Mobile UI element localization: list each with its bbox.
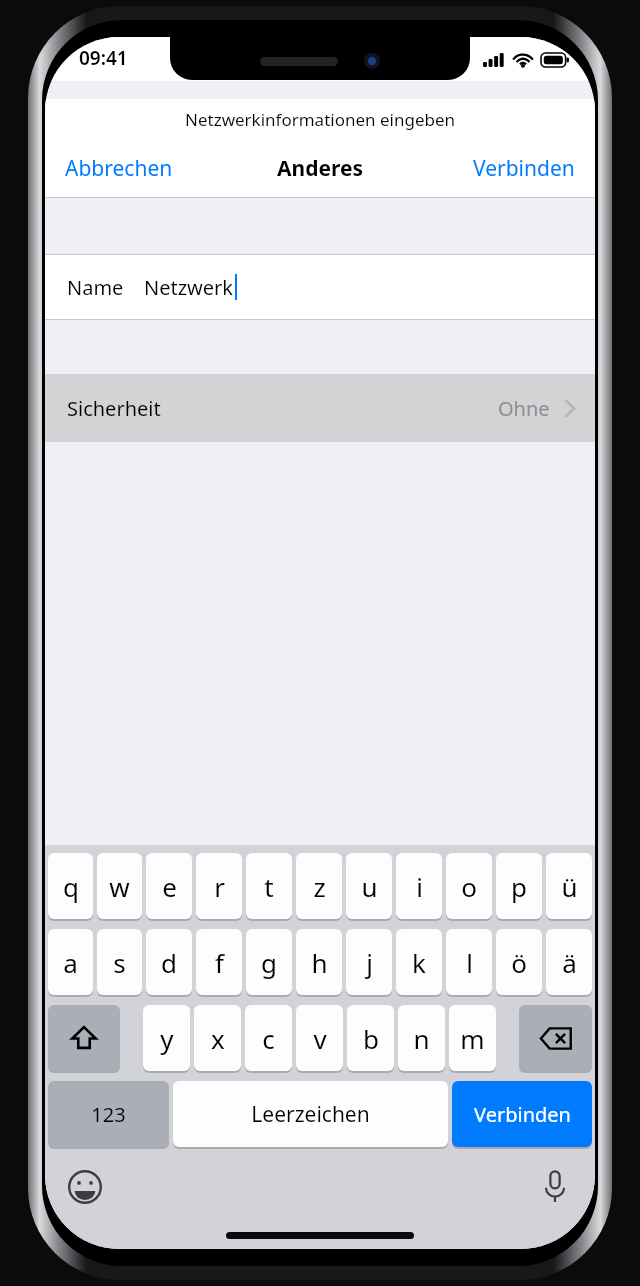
staticText: Verbinden [473,154,575,183]
button[interactable]: n [398,1005,445,1071]
button[interactable]: c [245,1005,292,1071]
staticText: Verbinden [474,1101,571,1128]
staticText: a [63,945,78,980]
staticText: z [313,869,326,904]
button[interactable]: Löschen [519,1005,592,1071]
staticText: x [211,1021,225,1056]
staticText: m [460,1021,485,1056]
button[interactable]: Abbrechen [45,144,193,193]
staticText: y [160,1021,174,1056]
staticText: h [311,945,328,980]
staticText: Anderes [277,154,364,183]
button[interactable]: Name [45,255,595,319]
button[interactable]: i [396,853,442,919]
staticText: f [215,945,224,980]
staticText: 123 [91,1101,126,1128]
button[interactable]: h [296,929,342,995]
button[interactable]: t [246,853,292,919]
button[interactable]: q [48,853,93,919]
button[interactable]: u [346,853,392,919]
button[interactable]: Shift [48,1005,120,1071]
staticText: Ohne [498,395,550,422]
button[interactable]: e [146,853,192,919]
staticText: p [511,869,527,904]
staticText: r [214,869,225,904]
button[interactable]: Verbinden [452,1081,592,1147]
staticText: Abbrechen [65,154,173,183]
staticText: s [113,945,126,980]
staticText: 09:41 [79,45,128,71]
button[interactable]: ä [546,929,592,995]
button[interactable]: Diktieren [533,1165,577,1209]
staticText: c [262,1021,275,1056]
staticText: g [261,945,277,980]
staticText: q [63,869,79,904]
staticText: t [264,869,274,904]
button[interactable]: v [296,1005,343,1071]
button[interactable]: g [246,929,292,995]
staticText: k [412,945,426,980]
staticText: l [466,945,473,980]
button[interactable]: s [97,929,142,995]
staticText: j [366,945,373,980]
button[interactable]: ö [496,929,542,995]
staticText: b [363,1021,379,1056]
button[interactable]: 123 [48,1081,169,1147]
staticText: n [413,1021,430,1056]
staticText: v [313,1021,327,1056]
button[interactable]: m [449,1005,496,1071]
staticText: i [416,869,423,904]
staticText: Netzwerk [144,274,234,301]
staticText: o [461,869,477,904]
staticText: u [361,869,378,904]
button[interactable]: a [48,929,93,995]
button[interactable]: k [396,929,442,995]
staticText: ö [511,945,527,980]
staticText: Sicherheit [67,395,161,422]
button[interactable]: Sicherheit [45,374,595,442]
button[interactable]: z [296,853,342,919]
button[interactable]: f [196,929,242,995]
staticText: ü [561,869,578,904]
staticText: e [162,869,177,904]
staticText: w [109,869,130,904]
button[interactable]: y [143,1005,190,1071]
button[interactable]: Verbinden [453,144,595,193]
button[interactable]: p [496,853,542,919]
button[interactable]: r [196,853,242,919]
button[interactable]: j [346,929,392,995]
button[interactable]: x [194,1005,241,1071]
button[interactable]: o [446,853,492,919]
staticText: ä [562,945,577,980]
button[interactable]: w [97,853,142,919]
staticText: Name [67,274,124,301]
button[interactable]: l [446,929,492,995]
button[interactable]: d [146,929,192,995]
button[interactable]: ü [546,853,592,919]
button[interactable]: b [347,1005,394,1071]
button[interactable]: Leerzeichen [173,1081,448,1147]
staticText: d [161,945,177,980]
staticText: Netzwerkinformationen eingeben [185,108,456,131]
staticText: Leerzeichen [251,1100,370,1129]
button[interactable]: Emoji [63,1165,107,1209]
